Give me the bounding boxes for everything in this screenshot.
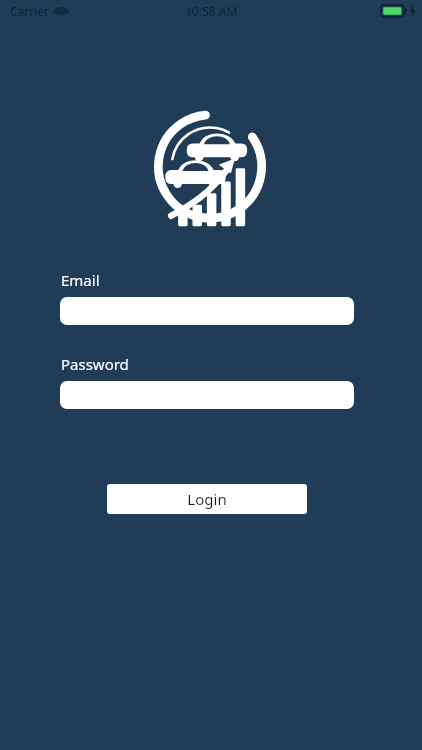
button[interactable]: Email input [60, 297, 354, 325]
button[interactable]: Login [107, 484, 307, 514]
staticText: Carrier [10, 3, 50, 19]
staticText: Email [61, 270, 100, 290]
staticText: Login [187, 489, 227, 509]
button[interactable]: Password input [60, 381, 354, 409]
staticText: Password [61, 354, 129, 374]
staticText: 10:58 AM [185, 3, 238, 19]
